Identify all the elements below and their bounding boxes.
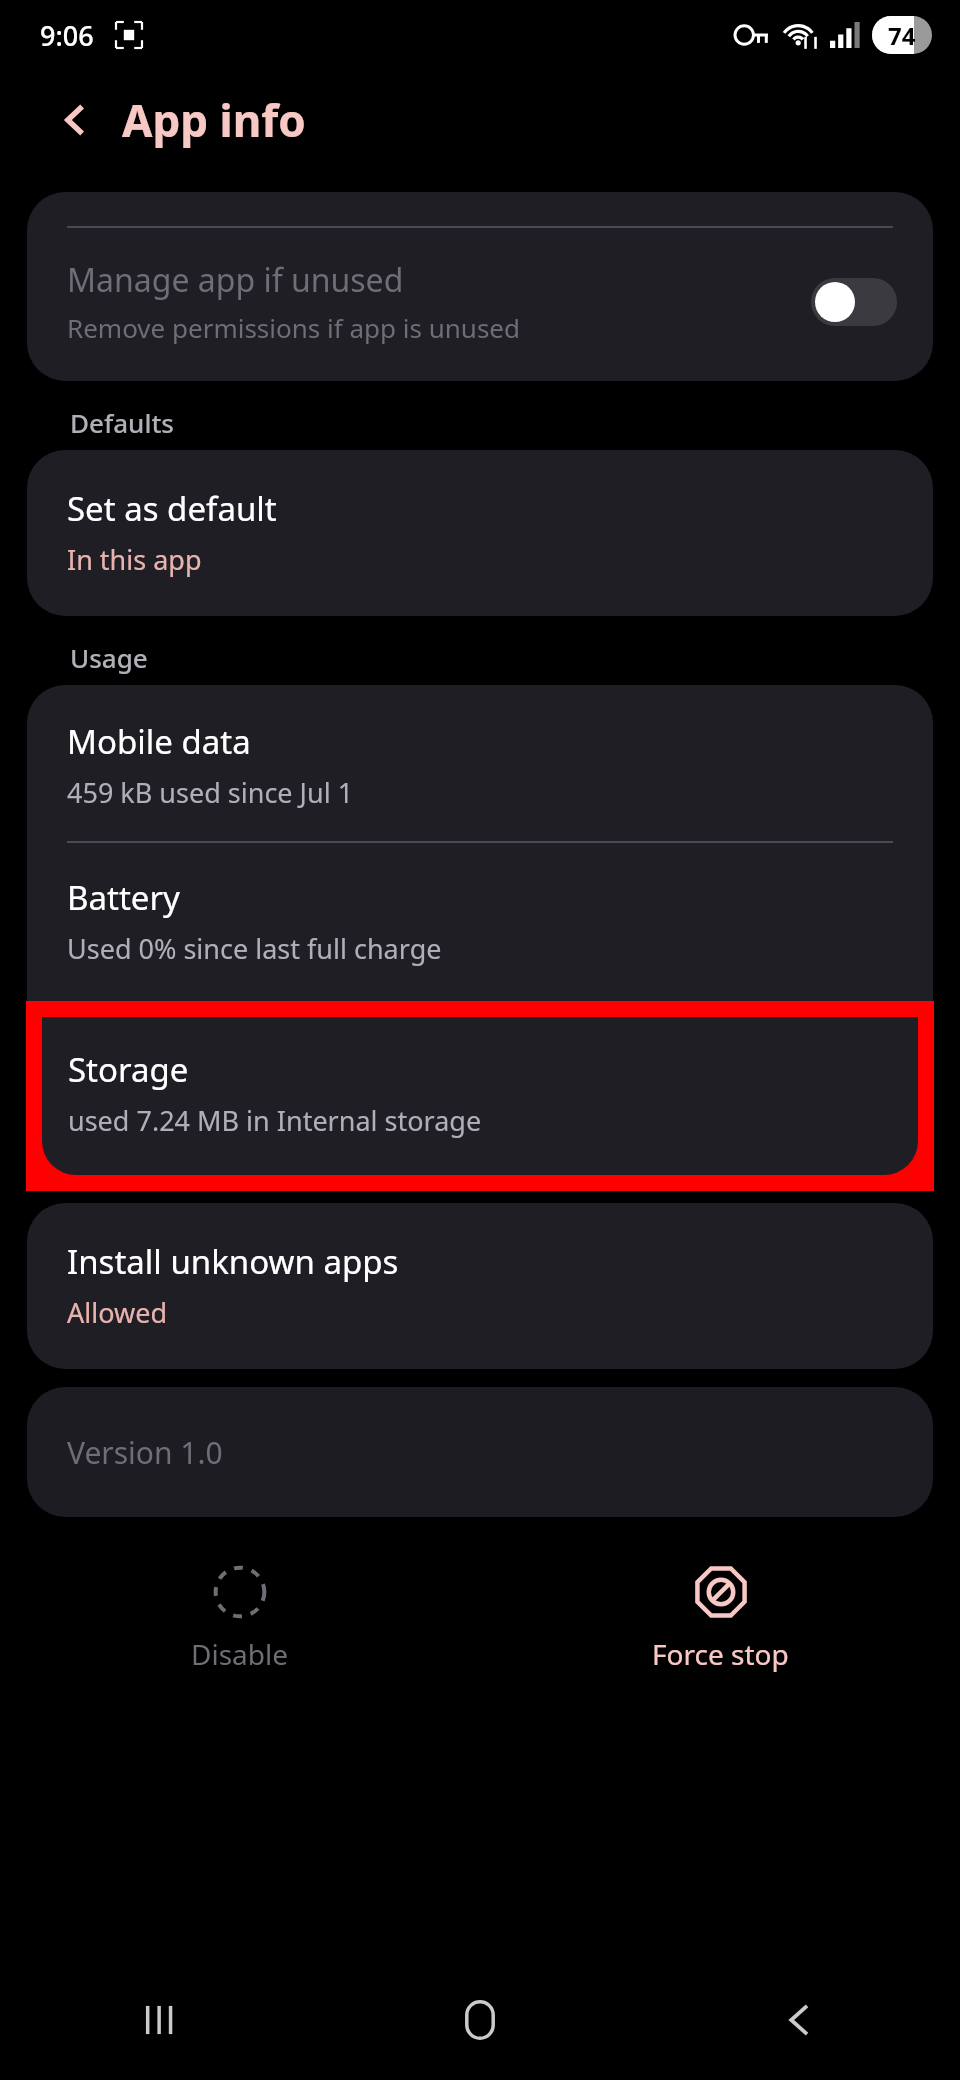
staticText: Battery bbox=[67, 875, 180, 920]
staticText: Defaults bbox=[70, 405, 175, 440]
button[interactable]: Set as default bbox=[27, 450, 933, 616]
staticText: 74 bbox=[888, 19, 916, 52]
button[interactable]: Back bbox=[640, 1960, 960, 2080]
staticText: Manage app if unused bbox=[67, 258, 404, 302]
button[interactable]: Back bbox=[48, 92, 104, 148]
button[interactable]: Install unknown apps bbox=[27, 1203, 933, 1369]
staticText: Set as default bbox=[67, 486, 277, 531]
button[interactable]: Storage bbox=[42, 1017, 918, 1175]
button[interactable]: Manage app if unused bbox=[27, 192, 933, 381]
staticText: Allowed bbox=[67, 1294, 168, 1331]
staticText: Version 1.0 bbox=[67, 1432, 223, 1473]
button[interactable]: Battery bbox=[27, 843, 933, 1001]
staticText: Used 0% since last full charge bbox=[67, 930, 442, 967]
staticText: Usage bbox=[70, 640, 148, 675]
button[interactable]: Home bbox=[320, 1960, 640, 2080]
staticText: App info bbox=[122, 90, 306, 150]
staticText: In this app bbox=[67, 541, 202, 578]
staticText: 459 kB used since Jul 1 bbox=[67, 774, 354, 811]
button[interactable]: Mobile data bbox=[27, 685, 933, 841]
button[interactable]: Disable bbox=[0, 1543, 480, 1693]
button[interactable]: Version 1.0 bbox=[27, 1387, 933, 1517]
staticText: 9:06 bbox=[40, 17, 94, 54]
button[interactable]: Recent apps bbox=[0, 1960, 320, 2080]
staticText: Mobile data bbox=[67, 719, 251, 764]
staticText: Disable bbox=[191, 1635, 289, 1673]
staticText: used 7.24 MB in Internal storage bbox=[68, 1102, 482, 1139]
staticText: Install unknown apps bbox=[67, 1239, 399, 1284]
staticText: Remove permissions if app is unused bbox=[67, 310, 520, 345]
staticText: Force stop bbox=[652, 1635, 789, 1673]
staticText: Storage bbox=[68, 1047, 189, 1092]
button[interactable]: Force stop bbox=[480, 1543, 960, 1693]
button[interactable]: Manage app if unused toggle bbox=[811, 278, 897, 326]
